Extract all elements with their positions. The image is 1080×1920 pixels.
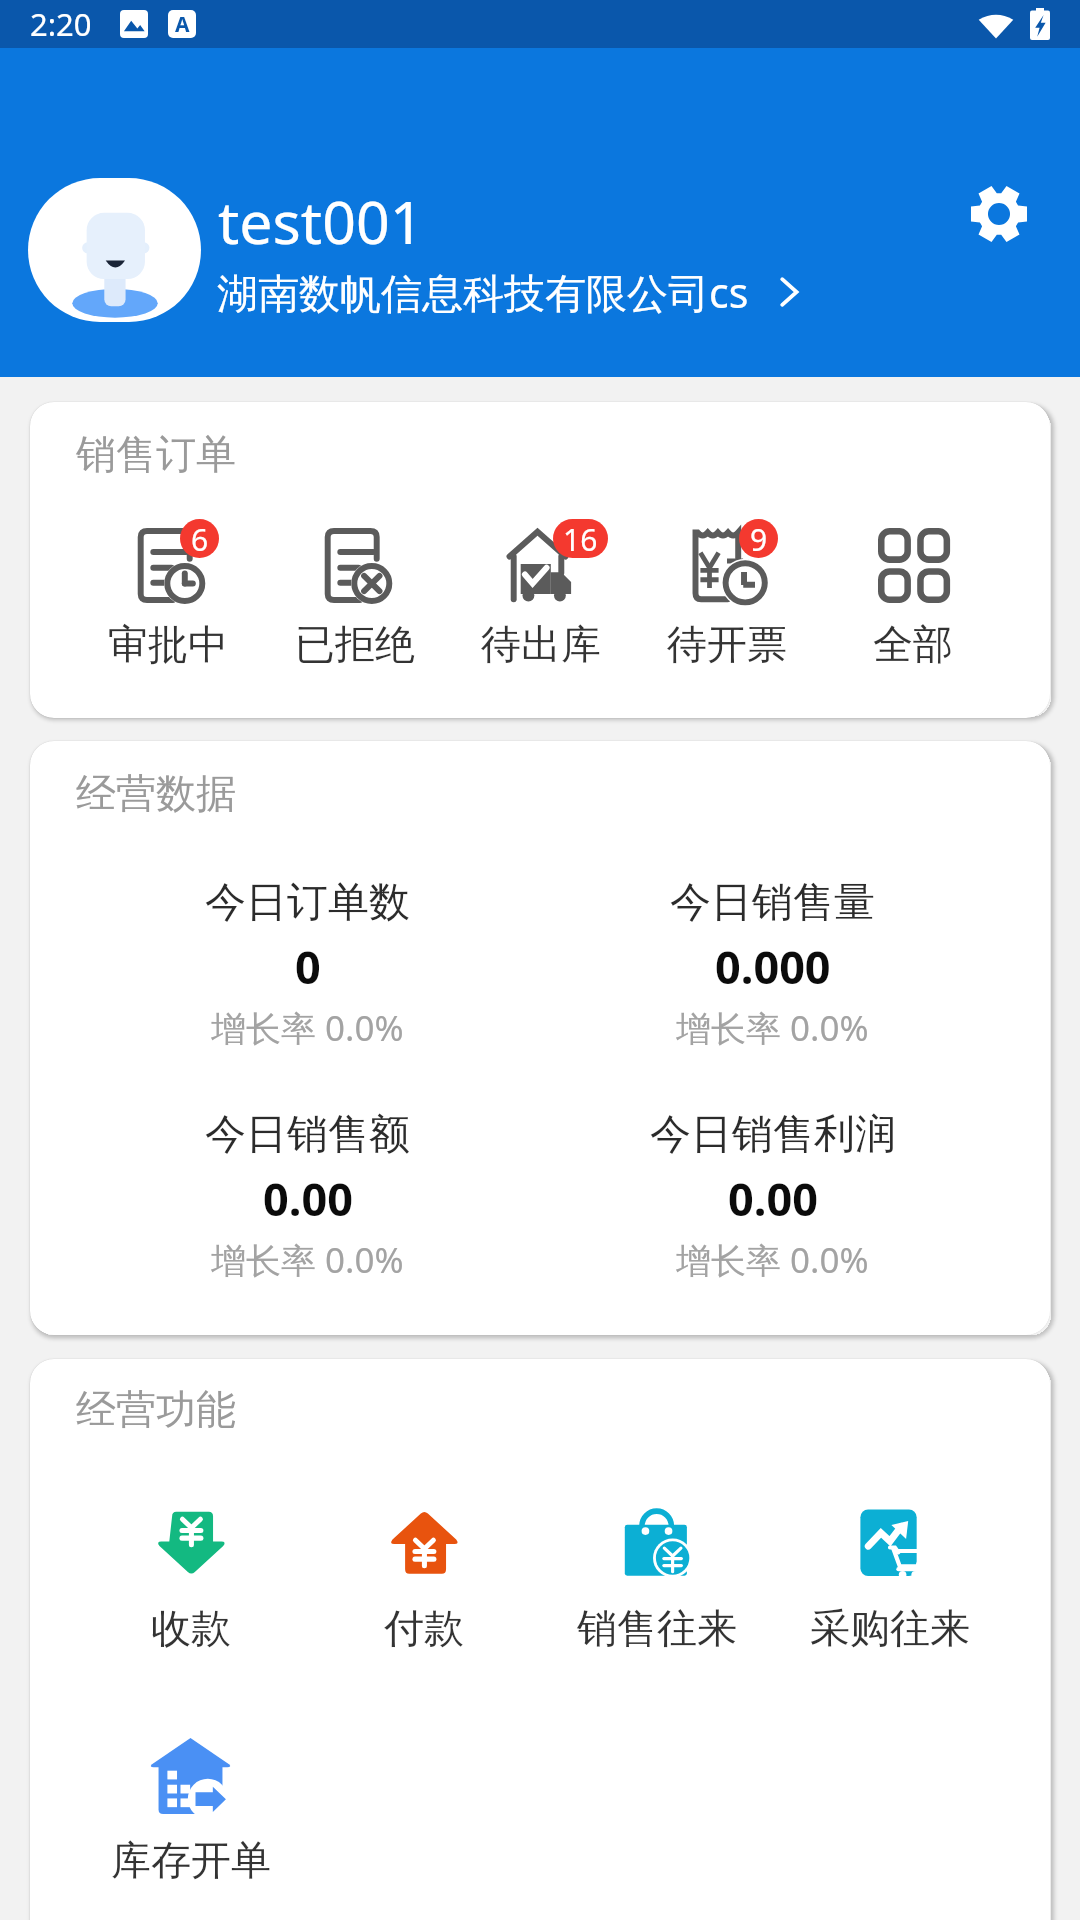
button[interactable]: 6 <box>74 528 261 669</box>
staticText: 待开票 <box>667 619 787 669</box>
staticText: 已拒绝 <box>295 619 415 669</box>
button[interactable]: 库存开单 <box>74 1738 307 1885</box>
staticText: 增长率 0.0% <box>211 1004 404 1052</box>
staticText: 采购往来 <box>810 1603 970 1653</box>
staticText: 收款 <box>151 1603 231 1653</box>
staticText: 湖南数帆信息科技有限公司cs <box>217 264 749 320</box>
staticText: 2:20 <box>30 3 92 45</box>
staticText: 9 <box>750 519 768 558</box>
staticText: A <box>175 10 190 38</box>
button[interactable]: 采购往来 <box>773 1506 1006 1653</box>
staticText: 0.000 <box>715 936 831 997</box>
staticText: 今日销售额 <box>205 1109 410 1161</box>
staticText: 待出库 <box>481 619 601 669</box>
button[interactable]: 已拒绝 <box>261 528 448 669</box>
staticText: 销售往来 <box>577 1603 737 1653</box>
staticText: 今日销售量 <box>670 877 875 929</box>
staticText: 经营功能 <box>76 1384 236 1434</box>
staticText: 库存开单 <box>111 1835 271 1885</box>
button[interactable]: 付款 <box>307 1506 540 1653</box>
button[interactable]: 今日销售利润 <box>540 1109 1005 1284</box>
button[interactable]: Settings <box>954 169 1044 259</box>
staticText: 16 <box>563 519 598 558</box>
button[interactable]: 全部 <box>820 528 1006 669</box>
staticText: 今日订单数 <box>205 877 410 929</box>
staticText: 增长率 0.0% <box>211 1236 404 1284</box>
staticText: 审批中 <box>108 619 228 669</box>
button[interactable]: 湖南数帆信息科技有限公司cs <box>217 264 809 320</box>
button[interactable]: 16 <box>448 528 634 669</box>
staticText: test001 <box>218 181 424 261</box>
button[interactable]: 今日销售量 <box>540 877 1005 1052</box>
button[interactable]: 销售往来 <box>540 1506 773 1653</box>
staticText: 增长率 0.0% <box>676 1004 869 1052</box>
button[interactable]: Profile avatar <box>28 178 201 322</box>
button[interactable]: 今日销售额 <box>75 1109 540 1284</box>
staticText: 增长率 0.0% <box>676 1236 869 1284</box>
staticText: 销售订单 <box>76 429 236 479</box>
staticText: 6 <box>191 519 209 558</box>
staticText: 今日销售利润 <box>650 1109 896 1161</box>
staticText: 0.00 <box>728 1168 818 1229</box>
staticText: 付款 <box>384 1603 464 1653</box>
button[interactable]: 收款 <box>74 1506 307 1653</box>
button[interactable]: 今日订单数 <box>75 877 540 1052</box>
staticText: 全部 <box>873 619 953 669</box>
staticText: 经营数据 <box>76 768 236 818</box>
staticText: 0.00 <box>263 1168 353 1229</box>
button[interactable]: 9 <box>634 528 820 669</box>
staticText: 0 <box>295 936 321 997</box>
